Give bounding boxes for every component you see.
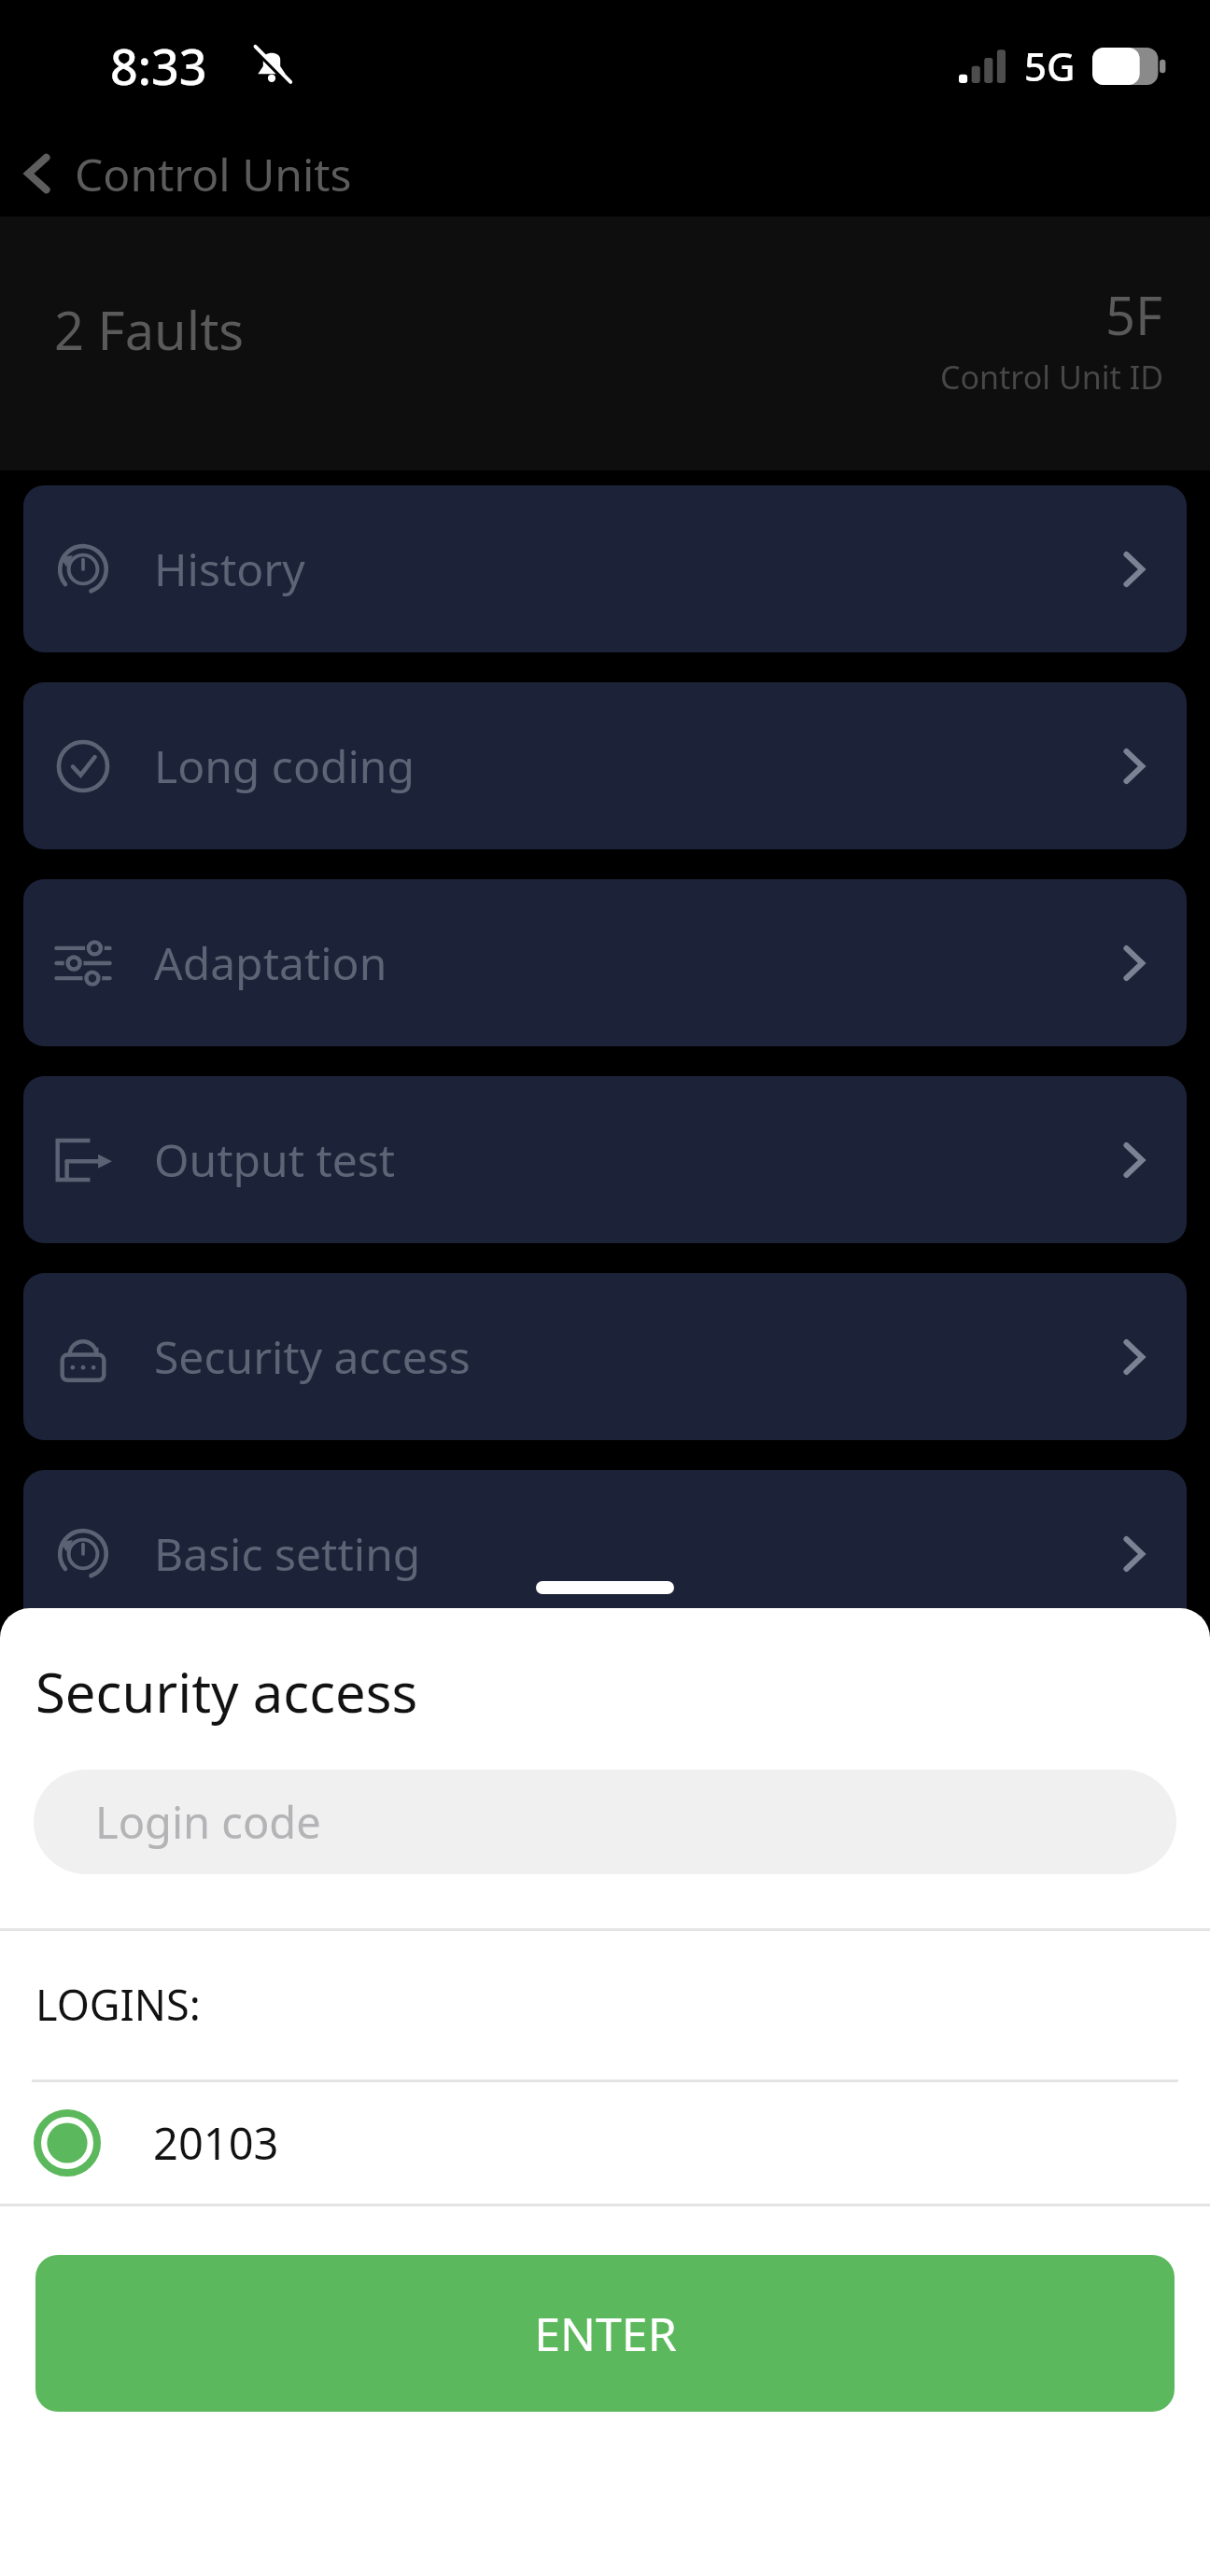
staticText: LOGINS:	[35, 1976, 201, 2033]
button[interactable]: Login code	[34, 1770, 1176, 1874]
staticText: Output test	[154, 1129, 396, 1190]
button[interactable]: Output test	[23, 1076, 1187, 1243]
staticText: 5F	[1105, 279, 1163, 350]
staticText: Login code	[95, 1792, 321, 1852]
button[interactable]: Long coding	[23, 682, 1187, 849]
staticText: Control Units	[75, 144, 352, 204]
staticText: Control Unit ID	[940, 356, 1163, 399]
button[interactable]: ENTER	[35, 2255, 1175, 2412]
staticText: History	[154, 539, 305, 599]
staticText: ENTER	[534, 2302, 677, 2365]
staticText: 8:33	[110, 33, 207, 99]
button[interactable]: History	[23, 485, 1187, 652]
staticText: Long coding	[154, 735, 415, 796]
staticText: Basic setting	[154, 1523, 421, 1584]
staticText: Adaptation	[154, 932, 387, 993]
button[interactable]: Basic setting	[23, 1470, 1187, 1637]
staticText: Security access	[154, 1326, 471, 1387]
staticText: 5G	[1024, 39, 1076, 92]
button[interactable]: Back	[0, 131, 1210, 217]
staticText: 2 Faults	[54, 294, 245, 365]
button[interactable]: 20103	[0, 2082, 1210, 2204]
button[interactable]: Security access	[23, 1273, 1187, 1440]
other: Back	[15, 151, 60, 196]
button[interactable]: Adaptation	[23, 879, 1187, 1046]
staticText: 20103	[153, 2113, 279, 2173]
staticText: Security access	[35, 1655, 418, 1729]
